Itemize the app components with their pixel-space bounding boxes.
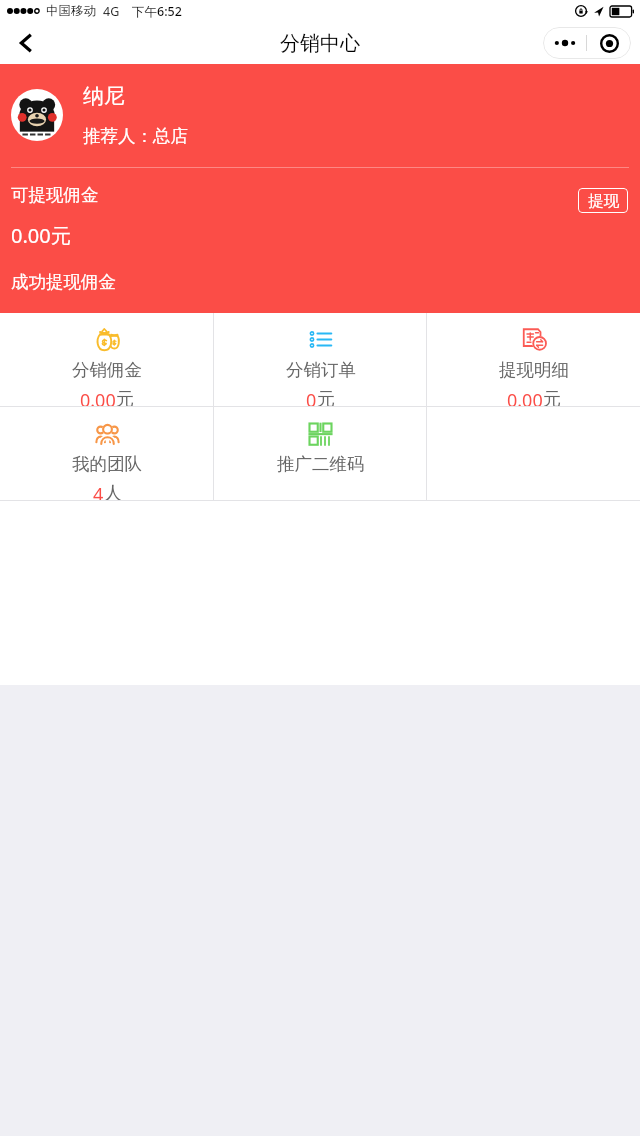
staticText: 中国移动 [46, 3, 96, 19]
staticText: 0.00元 [11, 222, 71, 249]
staticText: 分销中心 [280, 31, 360, 56]
staticText: 人 [104, 482, 122, 500]
button[interactable]: 我的团队 [0, 407, 214, 500]
staticText: 0.00 [80, 388, 116, 406]
button[interactable]: 推广二维码 [214, 407, 427, 500]
staticText: 0 [306, 388, 317, 406]
staticText: 元 [543, 388, 561, 406]
staticText: 推荐人：总店 [83, 125, 188, 147]
staticText: 提现明细 [499, 359, 569, 381]
staticText: 可提现佣金 [11, 184, 99, 206]
staticText: 4 [93, 482, 104, 500]
staticText: 0.00 [507, 388, 543, 406]
button[interactable]: 提现 [578, 188, 628, 213]
staticText: 成功提现佣金 [11, 271, 116, 293]
staticText: 提现 [588, 191, 619, 211]
staticText: 下午6:52 [132, 3, 182, 20]
staticText: 推广二维码 [277, 453, 365, 475]
staticText: 我的团队 [72, 453, 142, 475]
staticText: 纳尼 [83, 83, 125, 109]
staticText: 4G [103, 3, 120, 20]
button[interactable]: 分销佣金 [0, 313, 214, 406]
staticText: 元 [116, 388, 134, 406]
button[interactable]: 提现明细 [427, 313, 640, 406]
button[interactable]: Back [6, 23, 46, 63]
button[interactable]: More [543, 27, 586, 59]
button[interactable]: 分销订单 [214, 313, 427, 406]
button[interactable]: Close mini program [587, 27, 631, 59]
button[interactable]: Avatar [11, 89, 63, 141]
staticText: 分销佣金 [72, 359, 142, 381]
staticText: 元 [317, 388, 335, 406]
staticText: 分销订单 [286, 359, 356, 381]
